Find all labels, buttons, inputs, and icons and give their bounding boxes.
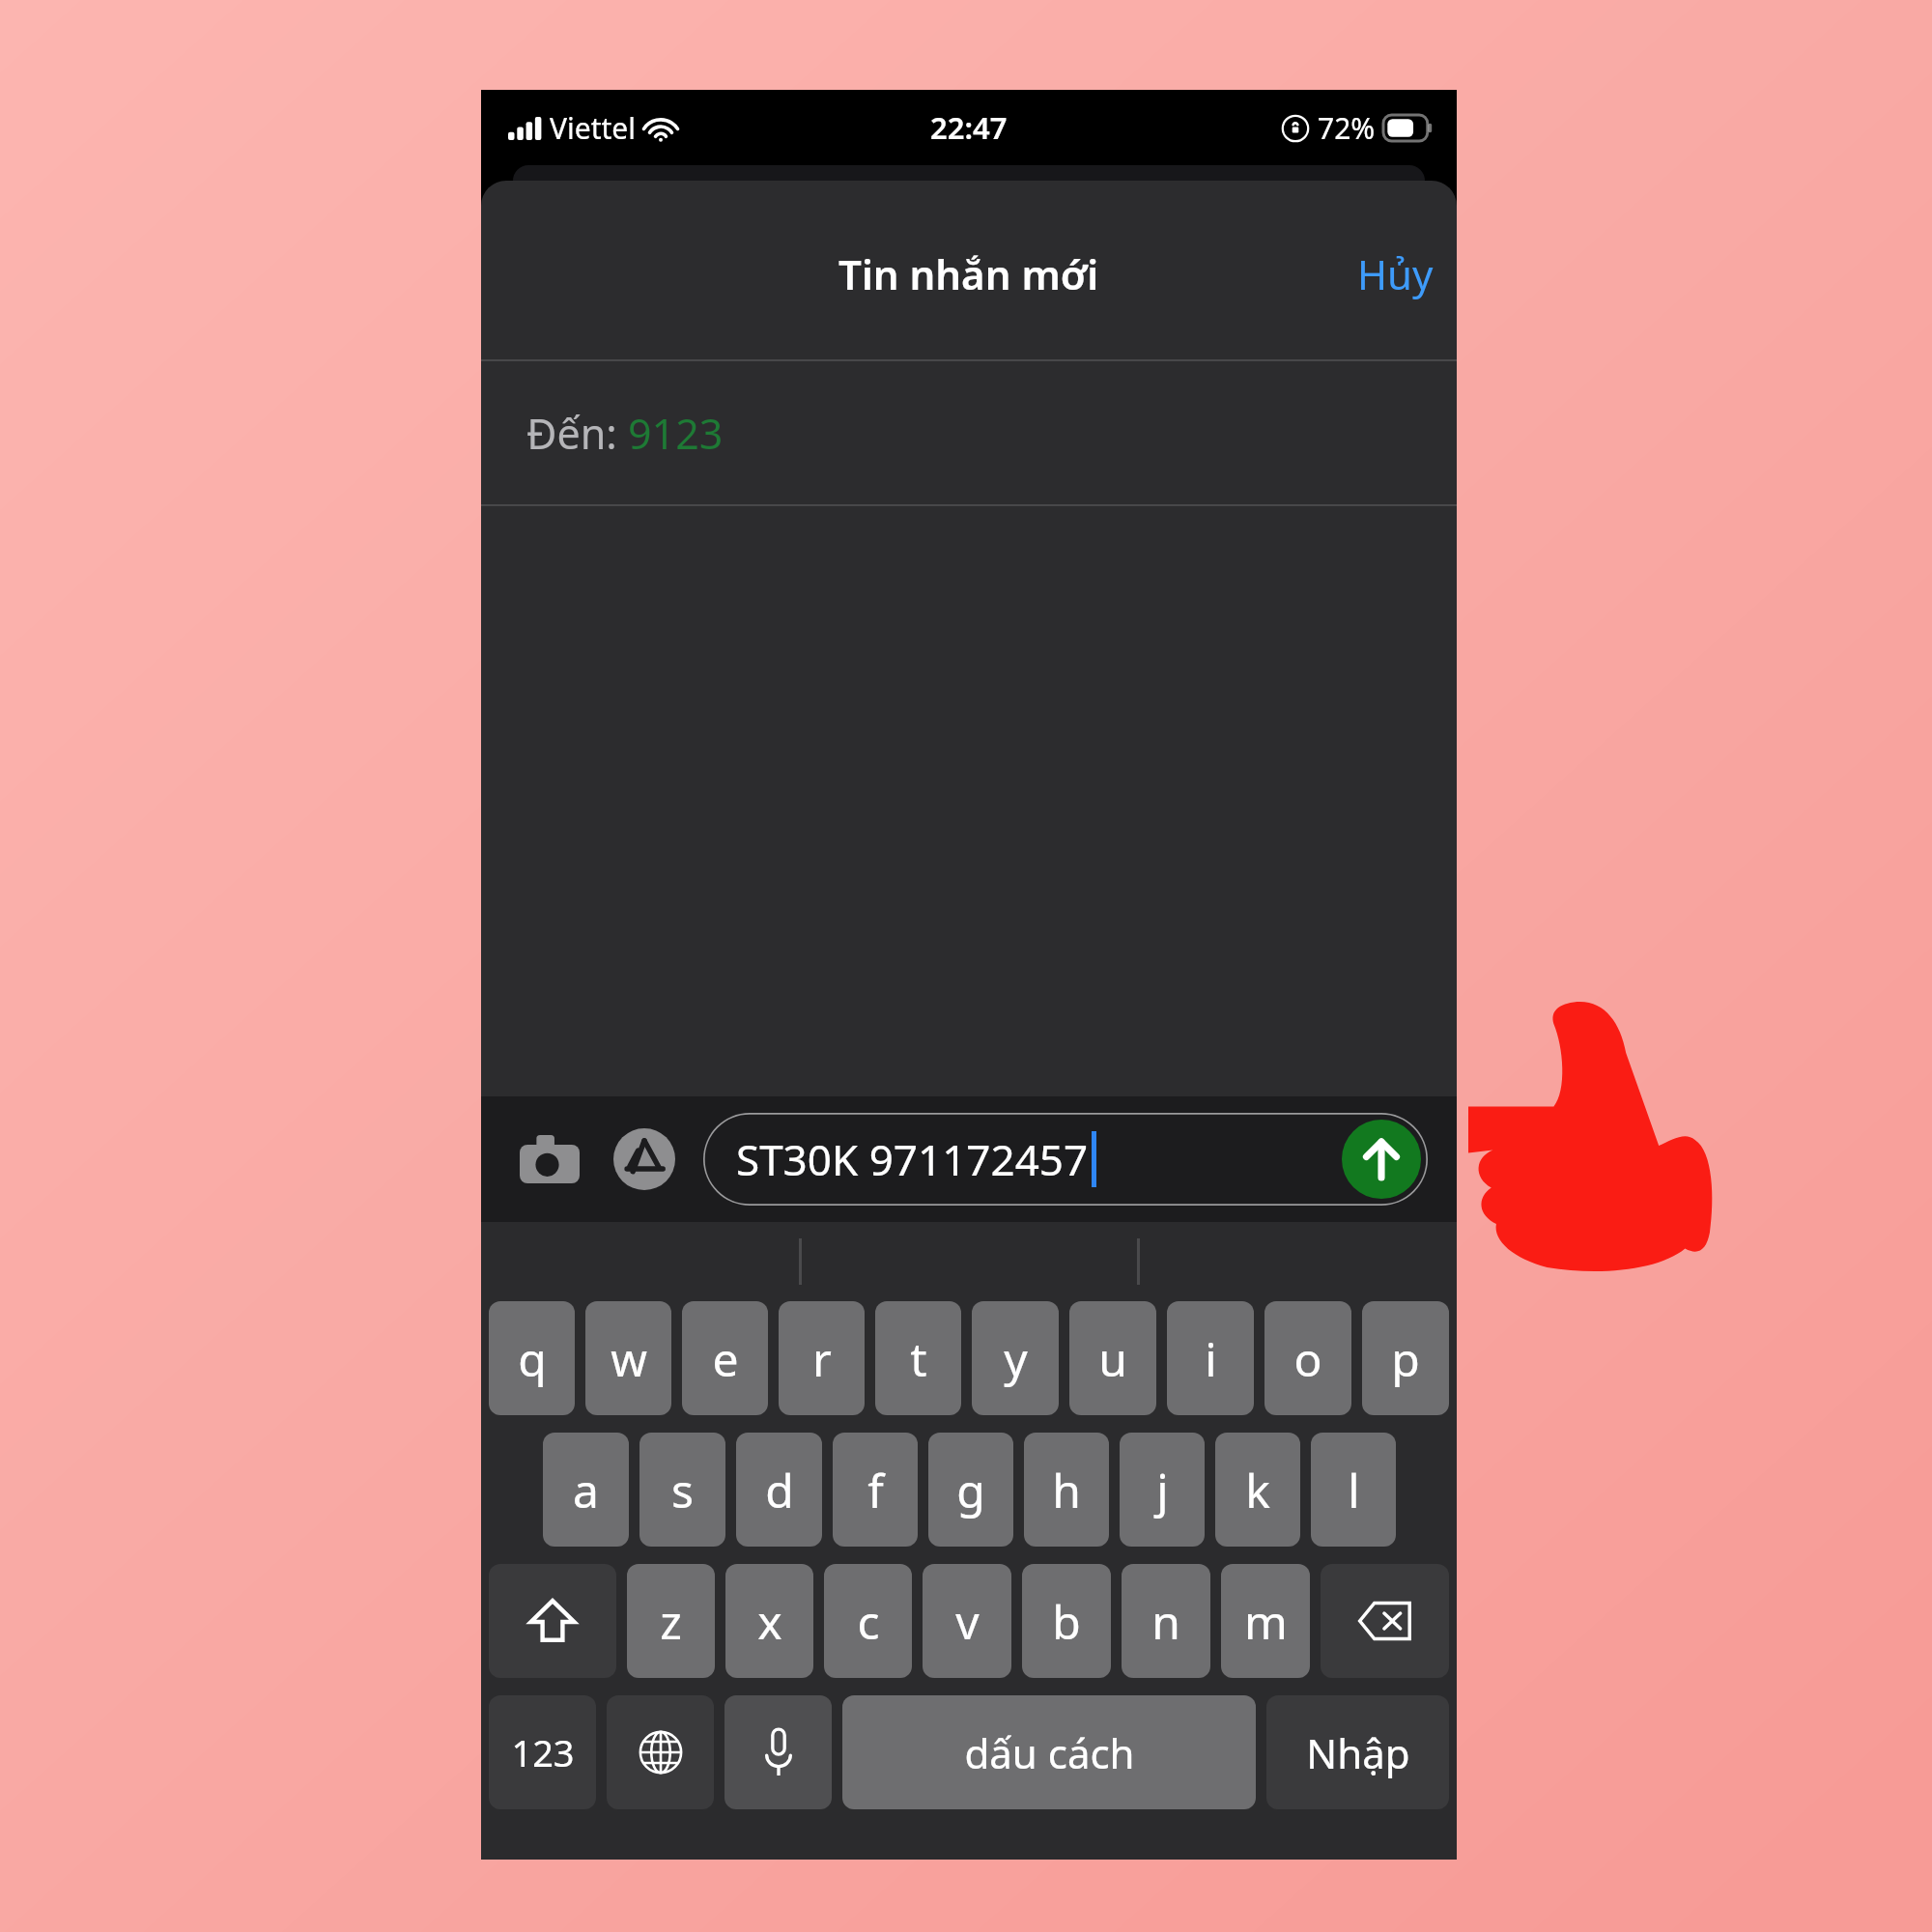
- staticText: 123: [511, 1727, 575, 1777]
- button[interactable]: b: [1022, 1564, 1111, 1678]
- staticText: Tin nhắn mới: [838, 246, 1099, 301]
- button[interactable]: d: [736, 1433, 822, 1547]
- button[interactable]: l: [1311, 1433, 1396, 1547]
- staticText: dấu cách: [964, 1725, 1135, 1780]
- button[interactable]: Backspace: [1321, 1564, 1449, 1678]
- staticText: y: [1004, 1327, 1028, 1390]
- staticText: v: [955, 1590, 980, 1653]
- button[interactable]: q: [489, 1301, 575, 1415]
- button[interactable]: y: [972, 1301, 1059, 1415]
- staticText: 72%: [1318, 108, 1376, 148]
- staticText: h: [1052, 1459, 1081, 1521]
- button[interactable]: f: [833, 1433, 918, 1547]
- button[interactable]: Dictate: [724, 1695, 832, 1809]
- staticText: Nhập: [1306, 1725, 1410, 1780]
- staticText: t: [910, 1327, 927, 1390]
- staticText: f: [867, 1459, 884, 1521]
- button[interactable]: m: [1221, 1564, 1310, 1678]
- button[interactable]: p: [1362, 1301, 1449, 1415]
- button[interactable]: v: [923, 1564, 1011, 1678]
- button[interactable]: a: [543, 1433, 629, 1547]
- staticText: j: [1156, 1459, 1169, 1521]
- button[interactable]: w: [585, 1301, 671, 1415]
- staticText: x: [757, 1590, 782, 1653]
- staticText: k: [1245, 1459, 1270, 1521]
- button[interactable]: u: [1069, 1301, 1156, 1415]
- staticText: o: [1293, 1327, 1322, 1390]
- staticText: i: [1205, 1327, 1217, 1390]
- staticText: q: [518, 1327, 547, 1390]
- button[interactable]: z: [627, 1564, 715, 1678]
- button[interactable]: c: [824, 1564, 912, 1678]
- button[interactable]: i: [1167, 1301, 1254, 1415]
- staticText: w: [611, 1327, 647, 1390]
- button[interactable]: Shift: [489, 1564, 616, 1678]
- button[interactable]: o: [1264, 1301, 1351, 1415]
- staticText: l: [1348, 1459, 1360, 1521]
- button[interactable]: t: [875, 1301, 961, 1415]
- staticText: u: [1098, 1327, 1127, 1390]
- button[interactable]: Hủy: [1334, 235, 1457, 313]
- button[interactable]: x: [725, 1564, 813, 1678]
- button[interactable]: r: [779, 1301, 865, 1415]
- staticText: z: [660, 1590, 682, 1653]
- staticText: b: [1052, 1590, 1081, 1653]
- button[interactable]: App Store: [605, 1120, 684, 1199]
- staticText: p: [1391, 1327, 1420, 1390]
- button[interactable]: Nhập: [1266, 1695, 1449, 1809]
- button[interactable]: n: [1122, 1564, 1210, 1678]
- staticText: r: [812, 1327, 832, 1390]
- button[interactable]: s: [639, 1433, 725, 1547]
- button[interactable]: e: [682, 1301, 768, 1415]
- staticText: e: [712, 1327, 739, 1390]
- staticText: 22:47: [930, 107, 1008, 148]
- staticText: c: [857, 1590, 880, 1653]
- staticText: Đến:: [526, 405, 628, 462]
- button[interactable]: h: [1024, 1433, 1109, 1547]
- staticText: 9123: [628, 405, 724, 462]
- staticText: g: [956, 1459, 985, 1521]
- button[interactable]: 123: [489, 1695, 596, 1809]
- staticText: a: [573, 1459, 599, 1521]
- button[interactable]: g: [928, 1433, 1013, 1547]
- staticText: d: [765, 1459, 794, 1521]
- staticText: Viettel: [550, 108, 636, 148]
- button[interactable]: j: [1120, 1433, 1205, 1547]
- staticText: ST30K 971172457: [736, 1130, 1089, 1188]
- staticText: n: [1151, 1590, 1180, 1653]
- button[interactable]: Send: [1342, 1120, 1421, 1199]
- button[interactable]: Đến:: [481, 361, 1457, 504]
- staticText: s: [671, 1459, 694, 1521]
- button[interactable]: Change keyboard: [607, 1695, 714, 1809]
- button[interactable]: k: [1215, 1433, 1300, 1547]
- button[interactable]: dấu cách: [842, 1695, 1256, 1809]
- button[interactable]: Camera: [510, 1120, 589, 1199]
- staticText: Hủy: [1357, 246, 1434, 301]
- staticText: m: [1244, 1590, 1288, 1653]
- button[interactable]: ST30K 971172457: [703, 1113, 1428, 1206]
